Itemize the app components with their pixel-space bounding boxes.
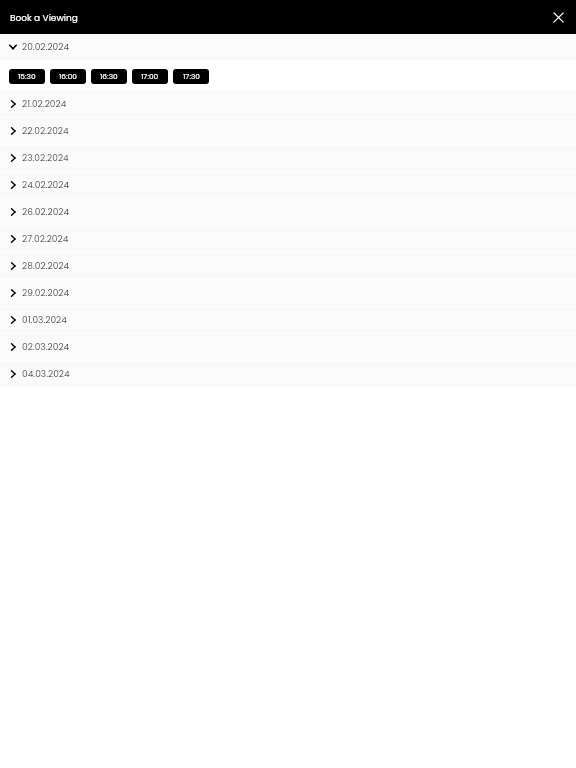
staticText: 23.02.2024 bbox=[22, 152, 69, 165]
staticText: 29.02.2024 bbox=[22, 287, 70, 300]
staticText: Book a Viewing bbox=[10, 12, 78, 25]
button[interactable]: 26.02.2024 bbox=[0, 199, 576, 225]
staticText: 20.02.2024 bbox=[22, 41, 70, 54]
staticText: 04.03.2024 bbox=[22, 368, 70, 381]
button[interactable]: 21.02.2024 bbox=[0, 91, 576, 117]
button[interactable]: 22.02.2024 bbox=[0, 118, 576, 144]
staticText: 22.02.2024 bbox=[22, 125, 69, 138]
button[interactable]: 24.02.2024 bbox=[0, 172, 576, 198]
button[interactable]: 28.02.2024 bbox=[0, 253, 576, 279]
button[interactable]: 01.03.2024 bbox=[0, 307, 576, 333]
staticText: 24.02.2024 bbox=[22, 179, 70, 192]
staticText: 17:00 bbox=[141, 71, 159, 81]
staticText: 17:30 bbox=[183, 71, 200, 81]
button[interactable]: Close bbox=[548, 7, 568, 27]
button[interactable]: 29.02.2024 bbox=[0, 280, 576, 306]
button[interactable]: 17:30 bbox=[173, 69, 209, 84]
staticText: 02.03.2024 bbox=[22, 341, 70, 354]
staticText: 21.02.2024 bbox=[22, 98, 67, 111]
button[interactable]: 17:00 bbox=[132, 69, 168, 84]
staticText: 15:30 bbox=[18, 71, 36, 81]
staticText: 28.02.2024 bbox=[22, 260, 70, 273]
staticText: 26.02.2024 bbox=[22, 206, 70, 219]
staticText: 01.03.2024 bbox=[22, 314, 67, 327]
button[interactable]: 20.02.2024 bbox=[0, 34, 576, 60]
button[interactable]: 27.02.2024 bbox=[0, 226, 576, 252]
button[interactable]: 16:00 bbox=[50, 69, 86, 84]
staticText: 16:30 bbox=[100, 71, 118, 81]
button[interactable]: 16:30 bbox=[91, 69, 127, 84]
staticText: 27.02.2024 bbox=[22, 233, 69, 246]
button[interactable]: 23.02.2024 bbox=[0, 145, 576, 171]
button[interactable]: 02.03.2024 bbox=[0, 334, 576, 360]
button[interactable]: 04.03.2024 bbox=[0, 361, 576, 387]
staticText: 16:00 bbox=[59, 71, 77, 81]
button[interactable]: 15:30 bbox=[9, 69, 45, 84]
